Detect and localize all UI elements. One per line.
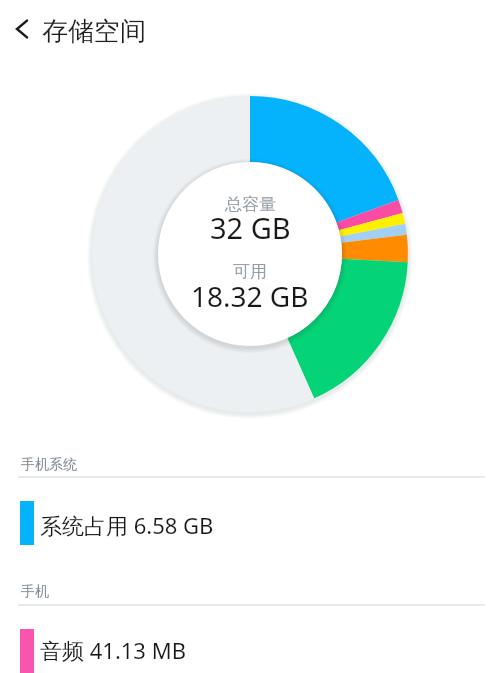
staticText: 手机: [21, 583, 49, 601]
button[interactable]: Back: [0, 9, 42, 51]
staticText: 系统占用 6.58 GB: [40, 510, 214, 540]
staticText: 音频 41.13 MB: [40, 635, 186, 665]
staticText: 存储空间: [42, 15, 146, 48]
staticText: 手机系统: [21, 456, 77, 474]
button[interactable]: 系统占用 6.58 GB: [0, 487, 500, 559]
staticText: 可用: [233, 261, 267, 282]
button[interactable]: 音频 41.13 MB: [0, 615, 500, 673]
staticText: 32 GB: [210, 208, 291, 247]
staticText: 总容量: [225, 194, 276, 215]
staticText: 18.32 GB: [191, 277, 309, 315]
